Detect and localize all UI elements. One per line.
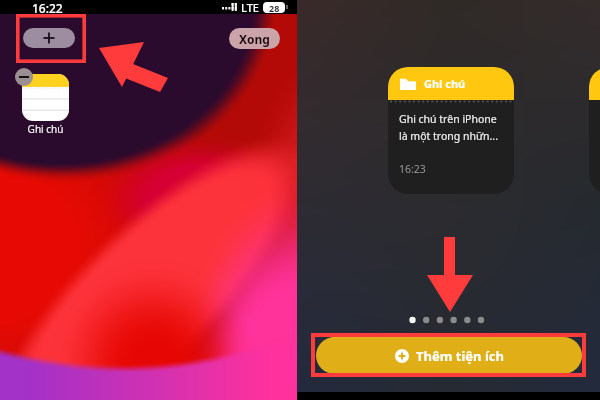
button[interactable]: Remove app <box>15 68 33 86</box>
staticText: 16:22 <box>32 0 63 14</box>
staticText: LTE <box>241 0 259 14</box>
button[interactable]: Thêm tiện ích <box>316 337 582 374</box>
staticText: Ghi chú <box>424 76 466 91</box>
staticText: là một trong nhữn... <box>399 129 498 143</box>
button[interactable]: Ghi chú <box>388 67 514 194</box>
staticText: Xong <box>239 31 270 47</box>
staticText: 16:23 <box>399 162 426 176</box>
staticText: Ghi chú trên iPhone <box>399 112 497 126</box>
staticText: Ghi chú <box>12 122 79 136</box>
staticText: Thêm tiện ích <box>416 347 504 365</box>
button[interactable]: Add widget <box>23 28 75 48</box>
button[interactable] <box>22 74 69 121</box>
button[interactable]: Xong <box>229 28 280 49</box>
staticText: 28 <box>269 2 280 13</box>
